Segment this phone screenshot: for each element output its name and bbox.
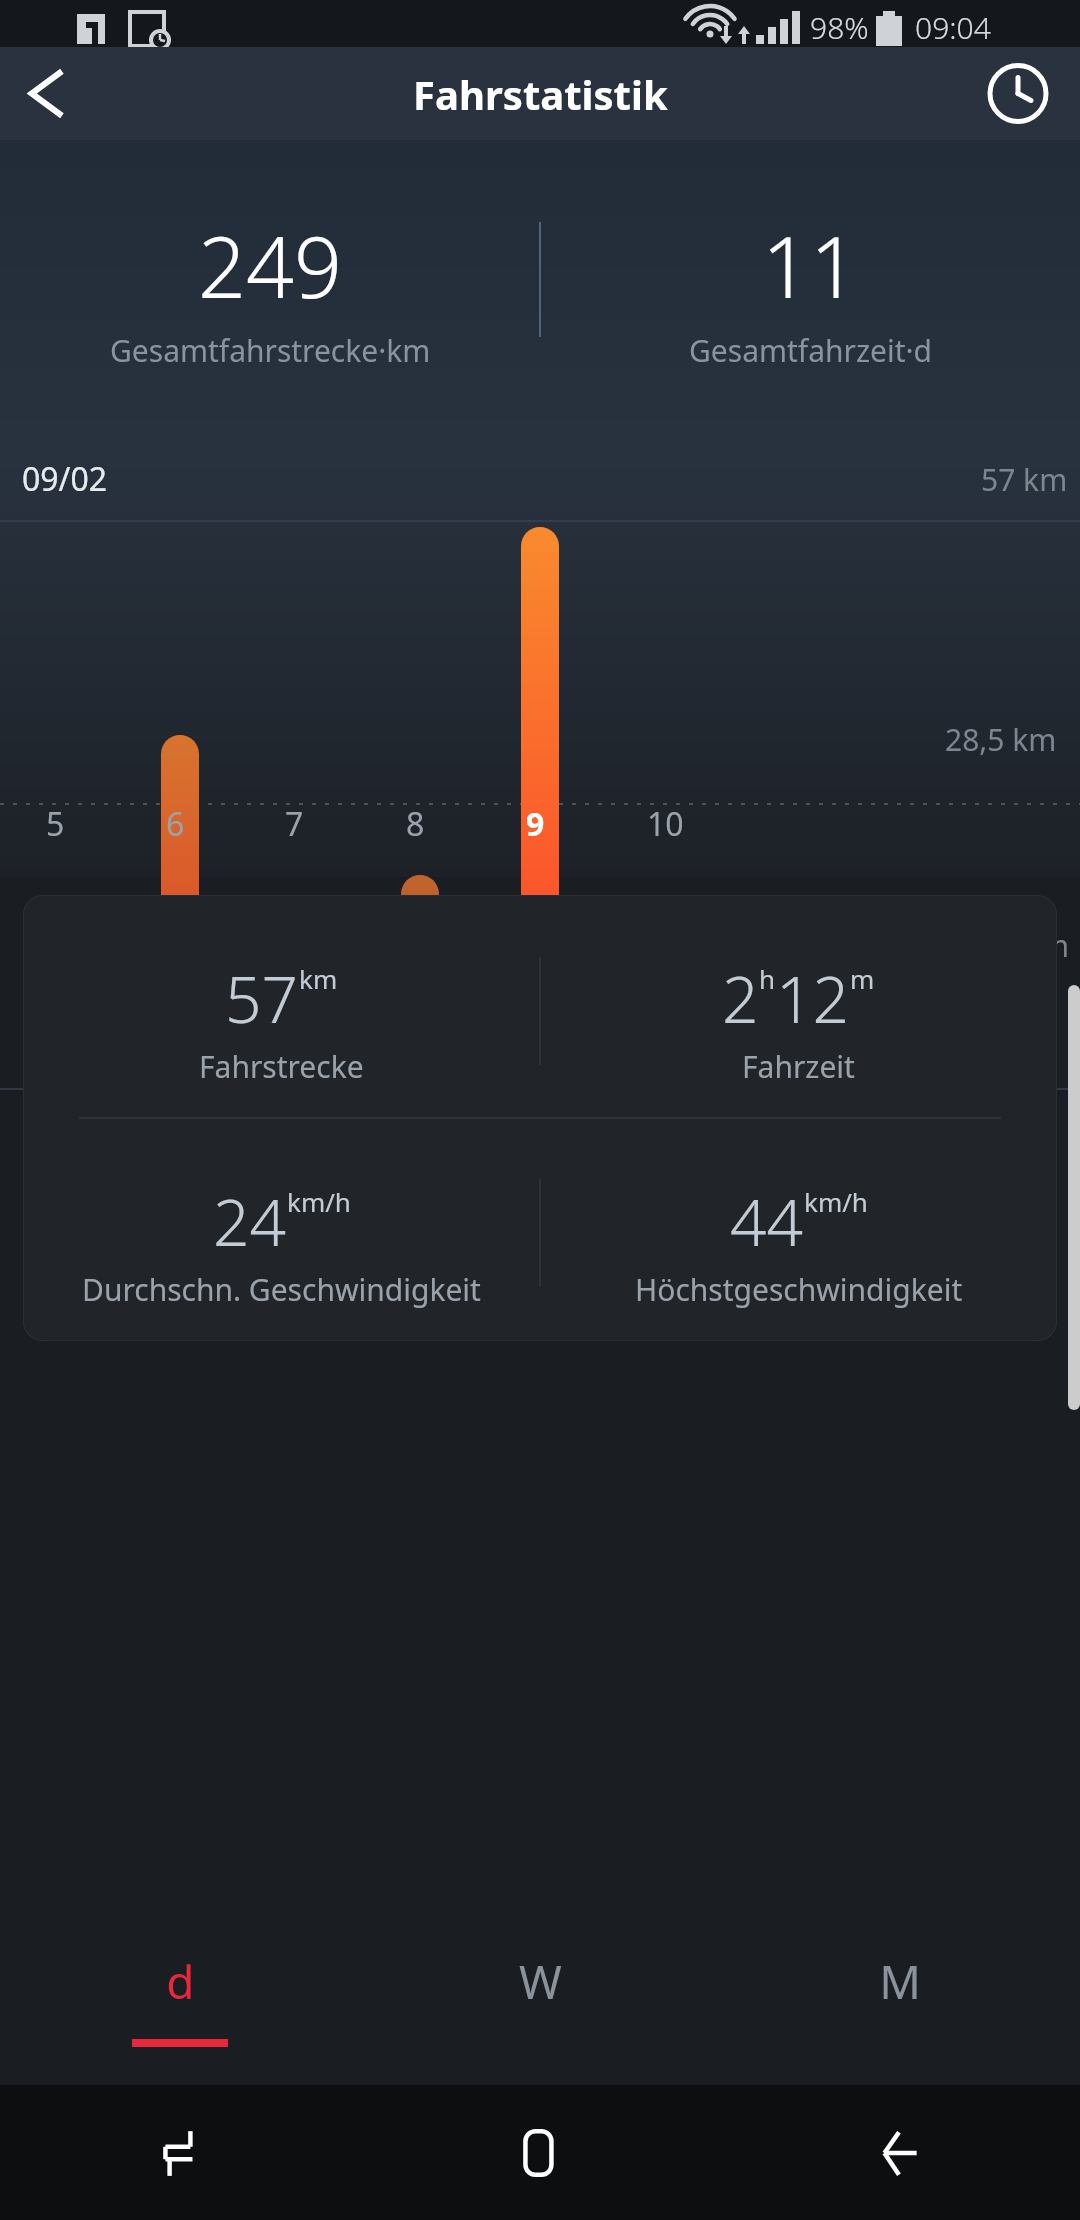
staticText: 57 km [981, 459, 1068, 500]
button[interactable]: Recents [0, 2085, 360, 2220]
staticText: d [166, 1950, 195, 2013]
staticText: 11 [762, 208, 858, 322]
staticText: 2 [722, 955, 759, 1042]
staticText: W [519, 1950, 562, 2013]
staticText: km [299, 961, 338, 996]
staticText: Durchschn. Geschwindigkeit [82, 1269, 481, 1310]
staticText: 9 [526, 802, 545, 846]
button[interactable]: M [720, 1910, 1080, 2085]
staticText: 7 [285, 802, 304, 846]
staticText: 0 km [1000, 925, 1070, 966]
staticText: 24 [213, 1178, 287, 1265]
button[interactable]: Home [360, 2085, 720, 2220]
staticText: Fahrzeit [742, 1046, 855, 1087]
staticText: 5 [46, 802, 65, 846]
staticText: Fahrstrecke [199, 1046, 364, 1087]
staticText: Fahrstatistik [413, 67, 668, 121]
button[interactable]: d [0, 1910, 360, 2085]
staticText: km/h [287, 1184, 351, 1219]
button[interactable]: Back [720, 2085, 1080, 2220]
button[interactable]: 57 [23, 895, 1057, 1341]
staticText: 10 [647, 802, 684, 846]
staticText: 57 [225, 955, 299, 1042]
button[interactable]: W [360, 1910, 720, 2085]
staticText: Gesamtfahrstrecke·km [110, 330, 431, 371]
staticText: 98% [810, 7, 869, 48]
staticText: 09:04 [915, 7, 991, 48]
staticText: Höchstgeschwindigkeit [635, 1269, 963, 1310]
staticText: 44 [730, 1178, 804, 1265]
staticText: 28,5 km [945, 719, 1057, 760]
button[interactable]: Back [0, 47, 96, 140]
staticText: h [759, 961, 776, 996]
staticText: m [850, 961, 875, 996]
staticText: 8 [406, 802, 425, 846]
staticText: Gesamtfahrzeit·d [689, 330, 932, 371]
staticText: km/h [804, 1184, 868, 1219]
staticText: 12 [776, 955, 850, 1042]
staticText: 6 [166, 802, 185, 846]
staticText: M [879, 1950, 921, 2013]
staticText: 249 [198, 208, 342, 322]
button[interactable]: History [970, 47, 1066, 140]
staticText: 09/02 [22, 457, 108, 501]
